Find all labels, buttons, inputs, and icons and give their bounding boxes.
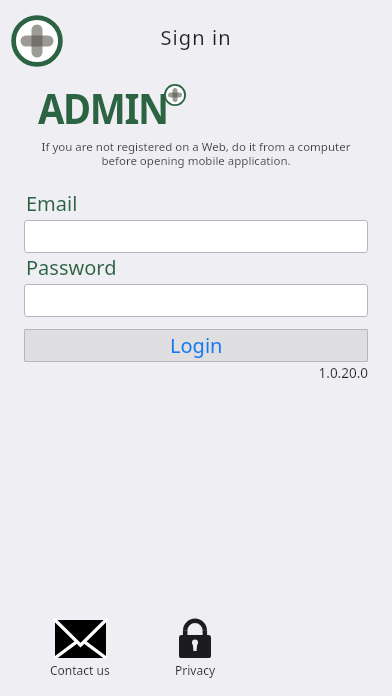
staticText: Sign in (0, 24, 392, 51)
button[interactable]: Password field (24, 284, 368, 317)
staticText: 1.0.20.0 (0, 364, 368, 382)
staticText: Password (26, 254, 117, 281)
button[interactable]: Contact us (24, 620, 136, 678)
staticText: Login (170, 332, 223, 359)
button[interactable]: Login (24, 329, 368, 362)
staticText: If you are not registered on a Web, do i… (0, 139, 392, 168)
staticText: Privacy (175, 662, 216, 678)
staticText: Contact us (50, 662, 110, 678)
button[interactable]: Privacy (139, 618, 251, 678)
button[interactable]: Email field (24, 220, 368, 253)
button[interactable]: Menu (12, 16, 62, 66)
staticText: Email (26, 190, 78, 217)
staticText: ADMIN (38, 80, 168, 136)
